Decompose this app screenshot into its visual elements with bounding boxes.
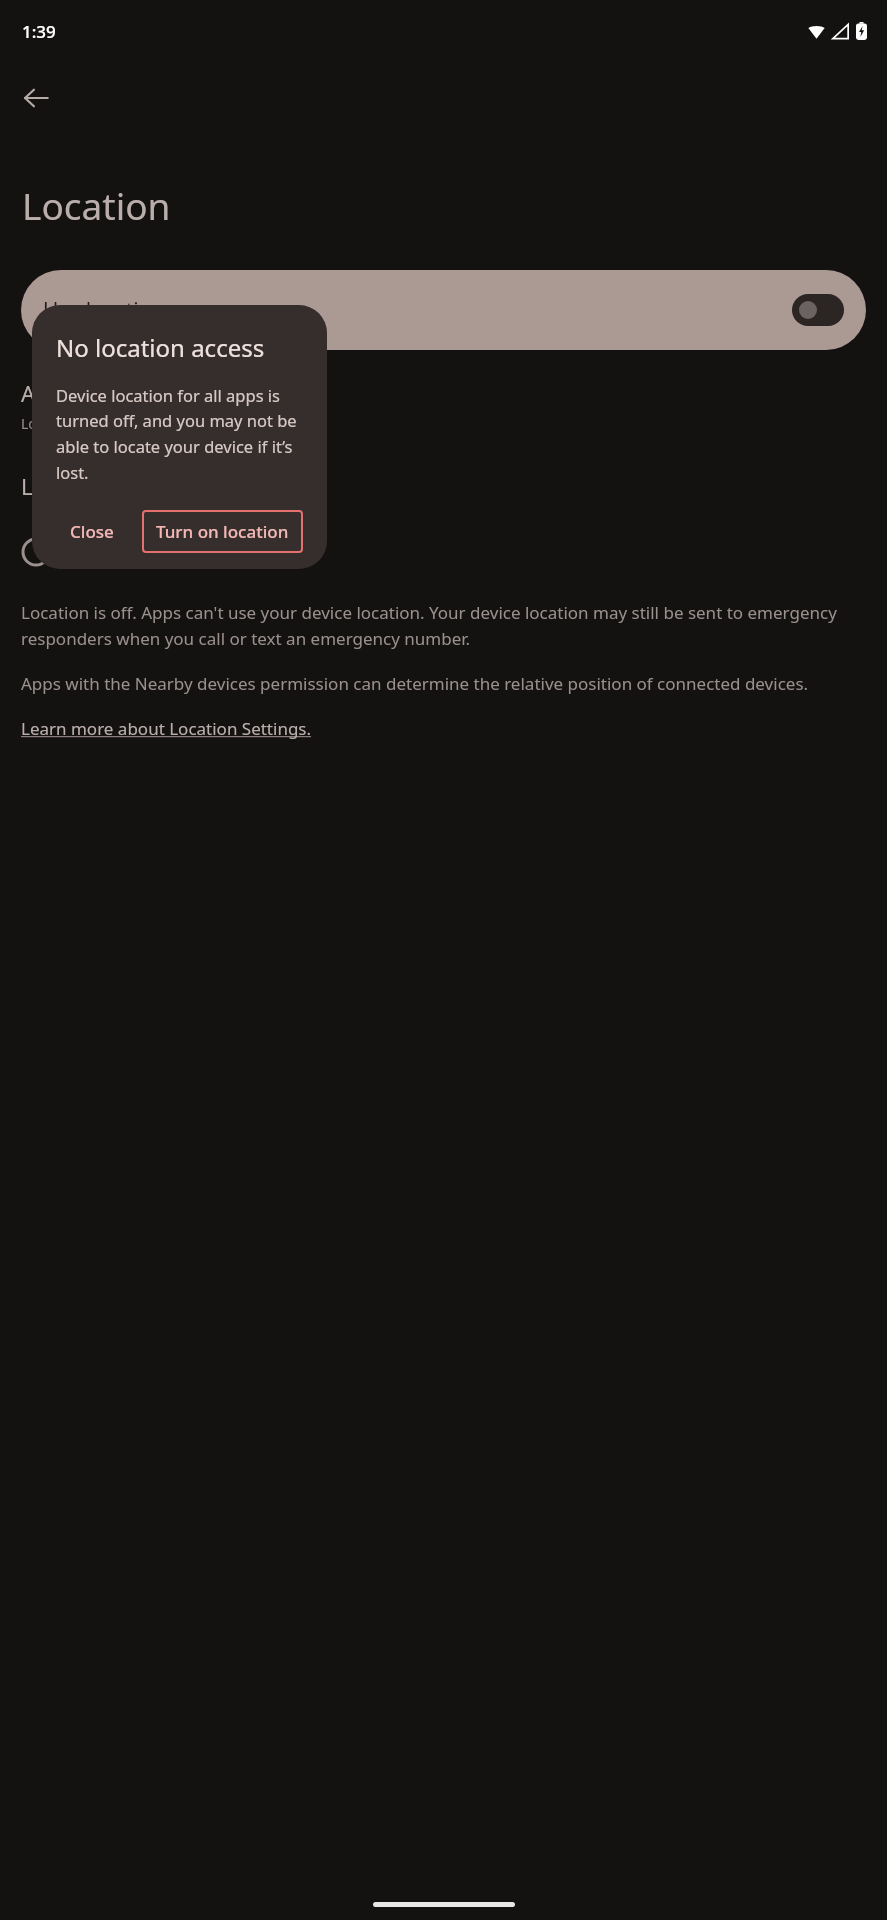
staticText: Location is off. Apps can't use your dev…: [21, 601, 866, 650]
button[interactable]: Use location: [21, 270, 866, 350]
staticText: Location services: [21, 471, 198, 501]
button[interactable]: Learn more about Location Settings.: [21, 717, 312, 740]
button[interactable]: Back: [8, 70, 64, 126]
staticText: Turn on location: [156, 520, 289, 543]
staticText: Close: [70, 520, 114, 543]
button[interactable]: Close: [56, 510, 128, 553]
staticText: No location access: [56, 331, 265, 364]
staticText: Location: [22, 180, 171, 230]
staticText: 1:39: [22, 20, 56, 43]
staticText: App location permissions: [21, 378, 282, 408]
staticText: Location access for apps: [21, 414, 182, 433]
staticText: Device location for all apps is turned o…: [56, 384, 303, 484]
staticText: Use location: [43, 296, 792, 325]
button[interactable]: Turn on location: [142, 510, 303, 553]
staticText: Apps with the Nearby devices permission …: [21, 672, 809, 695]
